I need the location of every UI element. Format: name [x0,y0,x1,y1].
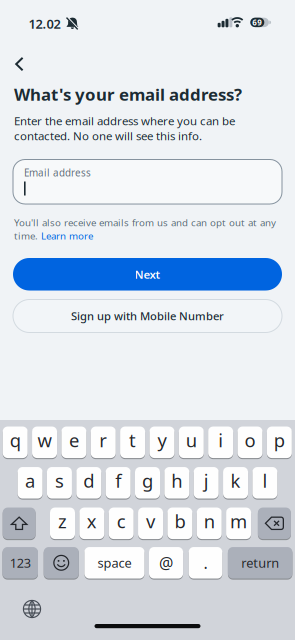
button[interactable]: t [120,426,145,459]
button[interactable]: Delete [258,507,291,540]
button[interactable]: x [79,507,104,540]
staticText: d [83,468,94,493]
staticText: q [10,428,21,453]
staticText: Sign up with Mobile Number [71,308,224,324]
button[interactable]: n [197,507,222,540]
staticText: return [241,554,279,571]
staticText: i [218,428,223,453]
staticText: l [262,468,267,493]
staticText: t [129,428,136,453]
staticText: c [117,509,126,534]
button[interactable]: c [109,507,134,540]
staticText: b [174,509,185,534]
button[interactable]: Emoji [44,546,79,579]
button[interactable]: i [208,426,233,459]
staticText: m [230,509,247,534]
button[interactable]: 123 [2,546,38,579]
button[interactable]: w [32,426,57,459]
button[interactable]: y [149,426,174,459]
button[interactable]: Next keyboard [17,594,47,624]
button[interactable]: v [138,507,163,540]
button[interactable]: Sign up with Mobile Number [13,299,282,332]
staticText: y [157,428,166,453]
staticText: p [274,428,285,453]
staticText: w [38,428,52,453]
button[interactable]: j [194,466,219,499]
staticText: 12.02 [28,15,60,33]
button[interactable]: @ [149,546,183,579]
staticText: s [55,468,64,493]
staticText: Next [134,266,160,282]
staticText: . [203,552,207,574]
staticText: time. [14,229,41,242]
button[interactable]: o [237,426,262,459]
staticText: k [231,468,241,493]
button[interactable]: . [189,546,222,579]
staticText: u [186,428,197,453]
staticText: x [87,509,97,534]
button[interactable]: Back [14,57,25,71]
staticText: e [69,428,79,453]
staticText: z [58,509,67,534]
staticText: a [25,468,35,493]
button[interactable]: e [61,426,86,459]
button[interactable]: Learn more [41,229,93,242]
button[interactable]: s [47,466,72,499]
staticText: space [97,554,131,571]
staticText: @ [159,552,173,574]
staticText: Email address [24,166,91,179]
staticText: Learn more [41,229,93,242]
button[interactable]: k [223,466,248,499]
staticText: 123 [10,554,31,571]
staticText: g [142,468,153,493]
button[interactable]: b [167,507,192,540]
button[interactable]: l [252,466,277,499]
staticText: o [244,428,255,453]
staticText: Enter the email address where you can be [14,113,235,128]
button[interactable]: g [135,466,160,499]
staticText: 69 [252,17,262,28]
button[interactable]: f [106,466,131,499]
button[interactable]: r [91,426,116,459]
staticText: f [115,468,121,493]
staticText: h [171,468,182,493]
staticText: j [204,468,209,493]
button[interactable]: Next [13,258,282,290]
button[interactable]: m [226,507,251,540]
button[interactable]: d [76,466,101,499]
staticText: What's your email address? [14,83,242,106]
button[interactable]: return [228,546,292,579]
staticText: n [204,509,215,534]
button[interactable]: a [18,466,43,499]
button[interactable]: z [50,507,75,540]
staticText: You'll also receive emails from us and c… [14,216,276,229]
button[interactable]: Email address [13,159,282,204]
staticText: contacted. No one will see this info. [14,128,202,143]
button[interactable]: Shift [3,507,36,540]
button[interactable]: space [84,546,144,579]
button[interactable]: u [179,426,204,459]
button[interactable]: q [3,426,28,459]
staticText: r [99,428,107,453]
staticText: v [146,509,155,534]
button[interactable]: h [164,466,189,499]
button[interactable]: p [267,426,292,459]
